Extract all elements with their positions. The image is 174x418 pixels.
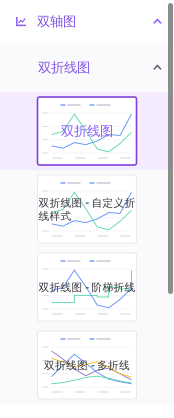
staticText: 双折线图 - 多折线 (44, 358, 130, 372)
button[interactable]: 双折线图 - 阶梯折线 (0, 248, 174, 326)
staticText: 双折线图 - 自定义折线样式 (38, 195, 135, 223)
button[interactable]: 双折线图 (0, 92, 174, 170)
button[interactable]: 双折线图 - 多折线 (0, 326, 174, 404)
button[interactable]: 双折线图 (0, 43, 174, 92)
staticText: 双折线图 (38, 59, 90, 76)
button[interactable]: 双轴图 (0, 0, 174, 43)
button[interactable]: 双折线图 - 自定义折线样式 (0, 170, 174, 248)
staticText: 双折线图 - 阶梯折线 (38, 280, 135, 294)
staticText: 双轴图 (37, 13, 76, 30)
staticText: 双折线图 (61, 123, 113, 139)
